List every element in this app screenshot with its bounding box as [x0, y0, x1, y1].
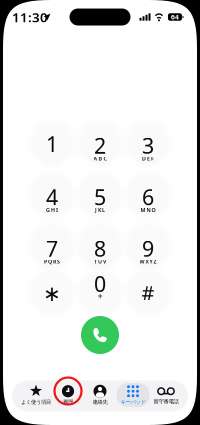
staticText: +	[97, 290, 102, 302]
staticText: J K L	[95, 206, 105, 214]
staticText: 7	[46, 234, 58, 263]
staticText: M N O	[140, 206, 155, 214]
button[interactable]: 3	[129, 123, 167, 161]
staticText: 8	[94, 234, 106, 263]
staticText: A B C	[93, 155, 106, 162]
staticText: 64	[171, 13, 179, 21]
button[interactable]: 7	[33, 226, 71, 264]
button[interactable]: 連絡先	[83, 383, 116, 407]
staticText: P Q R S	[44, 258, 60, 265]
button[interactable]: 6	[129, 174, 167, 212]
staticText: 11:30	[12, 8, 48, 26]
staticText: 連絡先	[92, 399, 107, 405]
button[interactable]: ∗	[33, 271, 71, 309]
staticText: よく使う項目	[21, 399, 51, 405]
staticText: 2	[94, 131, 106, 160]
button[interactable]: 1	[33, 123, 71, 161]
staticText: T U V	[94, 258, 106, 265]
button[interactable]: 0	[81, 271, 119, 309]
button[interactable]: 4	[33, 174, 71, 212]
button[interactable]: #	[129, 271, 167, 309]
staticText: 3	[142, 131, 154, 160]
staticText: 5	[94, 183, 106, 211]
staticText: G H I	[46, 206, 58, 214]
staticText: 留守番電話	[153, 398, 178, 405]
button[interactable]: キーパッド	[116, 383, 149, 407]
staticText: 9	[142, 234, 154, 263]
button[interactable]: よく使う項目	[19, 383, 52, 407]
button[interactable]: 8	[81, 226, 119, 264]
button[interactable]: 留守番電話	[149, 383, 182, 407]
button[interactable]: 5	[81, 174, 119, 212]
button[interactable]: 9	[129, 226, 167, 264]
staticText: 4	[46, 183, 58, 211]
staticText: 履歴	[63, 399, 73, 405]
staticText: ∗	[43, 281, 61, 306]
staticText: 1	[46, 130, 58, 158]
staticText: D E F	[142, 155, 154, 162]
staticText: キーパッド	[120, 399, 145, 405]
staticText: W X Y Z	[139, 258, 156, 265]
staticText: 6	[142, 183, 154, 211]
button[interactable]: 履歴	[51, 383, 84, 407]
staticText: #	[141, 279, 154, 306]
button[interactable]: 2	[81, 123, 119, 161]
button[interactable]: Call	[81, 316, 119, 354]
staticText: 0	[94, 270, 106, 298]
